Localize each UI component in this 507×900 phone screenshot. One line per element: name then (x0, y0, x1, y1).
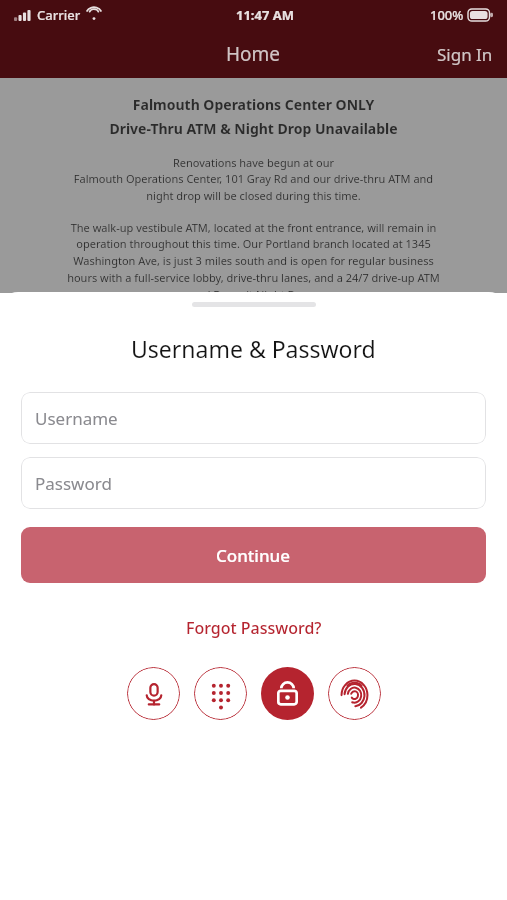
staticText: 11:47 AM (236, 6, 295, 24)
staticText: Renovations have begun at our Falmouth O… (34, 155, 473, 204)
button[interactable]: Continue (21, 527, 486, 583)
button[interactable]: Password login (261, 667, 314, 720)
staticText: Drive-Thru ATM & Night Drop Unavailable (34, 119, 473, 138)
button[interactable]: PIN keypad (194, 667, 247, 720)
staticText: Continue (216, 544, 291, 567)
staticText: Username & Password (131, 333, 376, 364)
staticText: Username (35, 407, 118, 430)
button[interactable]: Home (216, 37, 291, 71)
staticText: The walk-up vestibule ATM, located at th… (34, 220, 473, 293)
staticText: Falmouth Operations Center ONLY (34, 95, 473, 114)
button[interactable]: Sign In (423, 39, 507, 70)
button[interactable]: Fingerprint login (328, 667, 381, 720)
button[interactable]: Voice login (127, 667, 180, 720)
staticText: Carrier (37, 6, 81, 24)
button[interactable]: Forgot Password? (180, 611, 328, 645)
button[interactable]: Username (21, 392, 486, 444)
button[interactable]: Password (21, 457, 486, 509)
staticText: Password (35, 472, 112, 495)
staticText: 100% (430, 6, 464, 24)
